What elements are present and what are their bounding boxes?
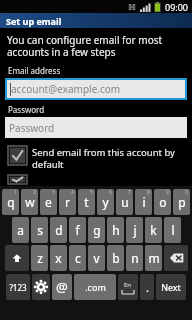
button[interactable]: v	[88, 245, 105, 271]
button[interactable]: w	[21, 189, 38, 215]
staticText: t	[84, 194, 89, 210]
button[interactable]: k	[145, 217, 162, 243]
button[interactable]: u	[116, 189, 133, 215]
button[interactable]: Backspace	[164, 245, 188, 271]
button[interactable]: r	[59, 189, 76, 215]
staticText: r	[65, 194, 70, 210]
button[interactable]: o	[154, 189, 171, 215]
staticText: .com	[85, 281, 106, 293]
button[interactable]: s	[31, 217, 48, 243]
staticText: y	[102, 194, 109, 210]
button[interactable]: Checkbox	[0, 175, 192, 184]
staticText: n	[131, 250, 139, 266]
staticText: o	[159, 194, 167, 210]
button[interactable]: account@example.com	[7, 80, 185, 98]
button[interactable]: h	[107, 217, 124, 243]
staticText: b	[112, 250, 120, 266]
staticText: z	[37, 250, 43, 266]
staticText: x	[55, 250, 62, 266]
other: Checkbox	[8, 175, 27, 184]
staticText: 6	[109, 189, 112, 196]
staticText: 9	[166, 189, 169, 196]
button[interactable]: i	[135, 189, 152, 215]
button[interactable]: At sign	[52, 274, 72, 300]
staticText: k	[150, 222, 157, 238]
button[interactable]: Checkbox	[8, 146, 186, 171]
button[interactable]: j	[126, 217, 143, 243]
staticText: 0	[185, 189, 188, 196]
staticText: 09:00	[165, 1, 189, 13]
staticText: j	[133, 222, 137, 238]
staticText: v	[93, 250, 100, 266]
staticText: Password	[9, 121, 55, 135]
staticText: 4	[71, 189, 74, 196]
staticText: u	[121, 194, 129, 210]
button[interactable]: Password	[5, 117, 187, 138]
staticText: h	[112, 222, 120, 238]
button[interactable]: m	[145, 245, 162, 271]
button[interactable]: b	[107, 245, 124, 271]
button[interactable]: g	[88, 217, 105, 243]
button[interactable]: .com	[74, 274, 116, 300]
staticText: c	[75, 250, 81, 266]
button[interactable]: a	[12, 217, 29, 243]
staticText: 5	[90, 189, 93, 196]
staticText: l	[171, 222, 175, 238]
staticText: Send email from this account by default	[32, 146, 175, 171]
staticText: Next	[161, 281, 181, 293]
staticText: En	[124, 281, 132, 289]
staticText: w	[25, 194, 35, 210]
button[interactable]: n	[126, 245, 143, 271]
button[interactable]: t	[78, 189, 95, 215]
button[interactable]: d	[50, 217, 67, 243]
other: Checkbox	[8, 146, 27, 165]
staticText: @	[56, 278, 68, 296]
staticText: Email address	[8, 65, 61, 76]
button[interactable]: Shift	[5, 245, 29, 271]
button[interactable]: Space	[118, 274, 138, 300]
staticText: 3	[52, 189, 55, 196]
staticText: ?123	[9, 282, 27, 293]
staticText: f	[75, 222, 80, 238]
button[interactable]: q	[2, 189, 19, 215]
button[interactable]: f	[69, 217, 86, 243]
staticText: You can configure email for most account…	[7, 33, 163, 59]
staticText: i	[142, 194, 146, 210]
staticText: .	[146, 280, 149, 295]
staticText: 1	[14, 189, 17, 196]
button[interactable]: l	[164, 217, 181, 243]
staticText: p	[178, 194, 186, 210]
button[interactable]: p	[173, 189, 190, 215]
staticText: m	[148, 250, 160, 266]
staticText: account@example.com	[11, 82, 121, 96]
staticText: e	[45, 194, 52, 210]
button[interactable]: c	[69, 245, 86, 271]
staticText: Password	[8, 104, 45, 115]
staticText: a	[17, 222, 24, 238]
staticText: g	[93, 222, 101, 238]
staticText: 8	[147, 189, 150, 196]
staticText: q	[7, 194, 15, 210]
staticText: d	[55, 222, 63, 238]
button[interactable]: ?123	[6, 274, 30, 300]
button[interactable]: e	[40, 189, 57, 215]
staticText: 7	[128, 189, 131, 196]
button[interactable]: Period	[140, 274, 154, 300]
button[interactable]: y	[97, 189, 114, 215]
staticText: Set up email	[6, 15, 62, 27]
staticText: s	[37, 222, 43, 238]
button[interactable]: Input settings	[32, 274, 50, 300]
staticText: 2	[33, 189, 36, 196]
button[interactable]: z	[31, 245, 48, 271]
button[interactable]: x	[50, 245, 67, 271]
button[interactable]: Next	[156, 274, 186, 300]
